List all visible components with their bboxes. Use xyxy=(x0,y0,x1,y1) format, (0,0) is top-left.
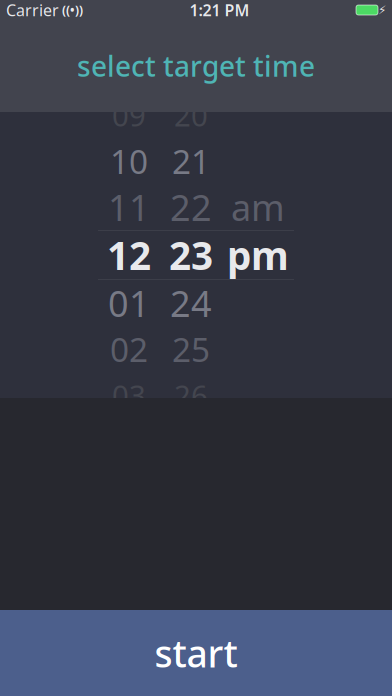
staticText: 12 xyxy=(107,229,151,281)
staticText: 25 xyxy=(172,327,210,371)
staticText: start xyxy=(154,628,237,678)
staticText: 10 xyxy=(110,139,148,183)
staticText: 11 xyxy=(108,183,150,231)
staticText: ⚡︎ xyxy=(378,3,386,17)
staticText: 24 xyxy=(170,279,212,327)
staticText: pm xyxy=(227,229,289,281)
staticText: 09 xyxy=(112,95,146,134)
staticText: ((•)) xyxy=(59,2,83,18)
staticText: 22 xyxy=(170,183,212,231)
staticText: select target time xyxy=(77,47,315,85)
staticText: 20 xyxy=(174,95,208,134)
button[interactable]: start xyxy=(0,610,392,696)
staticText: 1:21 PM xyxy=(189,0,249,21)
staticText: 21 xyxy=(172,139,210,183)
staticText: am xyxy=(231,183,285,231)
staticText: Carrier xyxy=(6,0,59,21)
staticText: 01 xyxy=(108,279,150,327)
staticText: 03 xyxy=(112,375,146,414)
staticText: 02 xyxy=(110,327,148,371)
staticText: 26 xyxy=(174,375,208,414)
staticText: 23 xyxy=(169,229,213,281)
button[interactable]: select target time xyxy=(0,20,392,112)
